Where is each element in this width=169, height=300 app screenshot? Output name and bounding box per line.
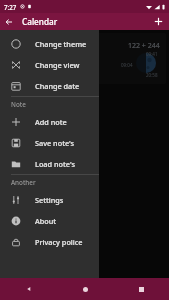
button[interactable]: Back [0,13,17,30]
button[interactable]: Change date [0,75,99,96]
button[interactable]: Save note's [0,132,99,153]
staticText: Change theme [35,39,87,49]
staticText: the office of Roman emperor, [4,163,75,170]
staticText: Note [11,100,26,109]
button[interactable]: Change theme [0,33,99,54]
staticText: nd the Black Douglas [4,233,56,240]
staticText: 122 + 244 [128,41,160,51]
staticText: reign [4,177,17,184]
staticText: y Linnaeus, and the formal [4,282,69,289]
staticText: Another [11,178,36,187]
staticText: died at Orléans after an 8-year [4,170,79,177]
staticText: Calendar [22,16,58,27]
button[interactable]: Home [57,278,113,300]
button[interactable]: Privacy police [0,231,99,252]
staticText: Add note [35,117,67,127]
staticText: Save note's [35,138,75,148]
staticText: About [35,216,57,226]
button[interactable]: Recents [113,278,169,300]
staticText: Settings [35,195,64,205]
staticText: 20:58 [146,72,158,78]
staticText: Load note's [35,159,75,169]
staticText: 09:41 [146,51,158,57]
staticText: Constantinople, setting the [4,184,71,191]
staticText: r International Code of [4,289,60,296]
staticText: 7:27 [4,3,17,11]
button[interactable]: Load note's [0,153,99,174]
staticText: Privacy police [35,237,83,247]
staticText: ngland recognises the [4,219,58,226]
staticText: Change date [35,81,80,91]
staticText: an [4,275,11,282]
button[interactable]: Back [0,278,57,300]
button[interactable]: Settings [0,189,99,210]
staticText: n churches [4,191,31,198]
button[interactable]: About [0,210,99,231]
staticText: se Day in Leicester, marking [4,198,72,205]
staticText: 09:04 [121,62,133,68]
staticText: I: By the Treaty of [4,212,47,219]
staticText: Change view [35,60,80,70]
button[interactable]: Add [150,13,167,30]
button[interactable]: Change view [0,54,99,75]
button[interactable]: Add note [0,111,99,132]
staticText: area. [4,156,17,163]
